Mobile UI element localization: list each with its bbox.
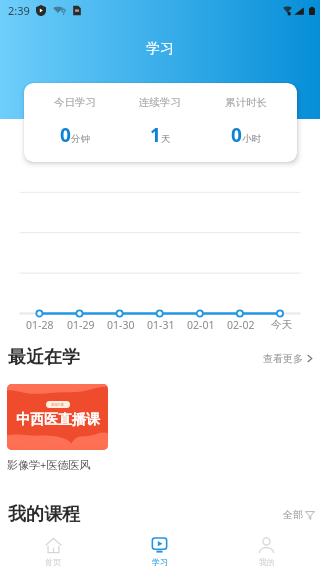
staticText: 我的	[259, 557, 275, 567]
staticText: 连续学习	[139, 96, 181, 109]
staticText: 影像学+医德医风	[7, 457, 91, 472]
button[interactable]: 今日学习	[32, 83, 117, 162]
button[interactable]: 2021年	[7, 384, 108, 472]
staticText: 天	[161, 133, 171, 145]
button[interactable]: 累计时长	[203, 83, 289, 162]
staticText: 分钟	[71, 133, 90, 145]
staticText: 我的课程	[8, 503, 80, 526]
staticText: 2021年	[51, 402, 65, 407]
staticText: 02-01	[187, 318, 215, 332]
staticText: 首页	[45, 557, 61, 567]
button[interactable]: 我的	[213, 534, 320, 569]
staticText: 1	[150, 122, 161, 148]
staticText: 中西医直播课	[16, 411, 100, 429]
staticText: 0	[231, 122, 242, 148]
button[interactable]: 首页	[0, 534, 106, 569]
staticText: 查看更多	[263, 352, 303, 365]
staticText: 2:39	[8, 3, 30, 18]
staticText: 全部	[283, 508, 303, 521]
button[interactable]: 查看更多	[257, 348, 320, 369]
button[interactable]: 学习	[106, 534, 213, 569]
staticText: 今天	[271, 318, 292, 331]
staticText: 今日学习	[54, 96, 96, 109]
staticText: 01-31	[147, 318, 175, 332]
staticText: 01-29	[67, 318, 95, 332]
staticText: 0	[60, 122, 71, 148]
staticText: 小时	[242, 133, 261, 145]
staticText: 学习	[152, 557, 168, 567]
staticText: 01-28	[26, 318, 54, 332]
staticText: 学习	[146, 40, 174, 58]
staticText: 最近在学	[8, 346, 80, 369]
button[interactable]: 连续学习	[117, 83, 203, 162]
staticText: 累计时长	[225, 96, 267, 109]
staticText: 02-02	[227, 318, 255, 332]
staticText: 01-30	[107, 318, 135, 332]
button[interactable]: 全部	[278, 504, 320, 525]
